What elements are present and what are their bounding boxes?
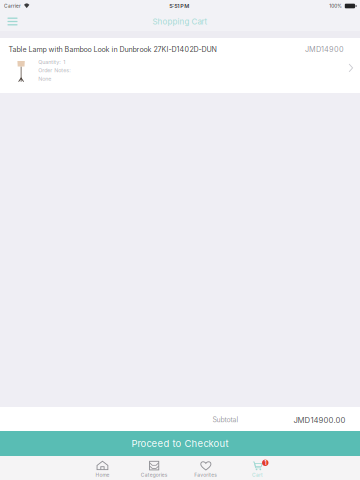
button[interactable]: Categories [128, 456, 180, 480]
staticText: None [38, 75, 51, 82]
staticText: Order Notes: [38, 67, 71, 74]
button[interactable]: Proceed to Checkout [0, 431, 360, 456]
staticText: 5:51 PM [169, 3, 189, 9]
staticText: Carrier [4, 3, 21, 9]
staticText: JMD14900.00 [293, 415, 345, 425]
staticText: Proceed to Checkout [131, 438, 228, 449]
staticText: 1 [264, 459, 266, 466]
staticText: Subtotal [212, 416, 238, 424]
button[interactable]: Home [77, 456, 128, 480]
staticText: Favorites [194, 472, 217, 478]
button[interactable]: Menu [0, 12, 25, 31]
button[interactable]: Cart [232, 456, 283, 480]
staticText: JMD14900 [305, 45, 344, 54]
staticText: Shopping Cart [152, 17, 207, 26]
staticText: Quantity: 1 [38, 59, 65, 65]
staticText: Table Lamp with Bamboo Look in Dunbrook … [8, 45, 216, 54]
staticText: 100% [329, 3, 342, 9]
button[interactable]: Table Lamp with Bamboo Look in Dunbrook … [0, 38, 360, 93]
staticText: Cart [252, 472, 263, 478]
staticText: Home [95, 472, 109, 478]
staticText: Categories [141, 472, 168, 478]
button[interactable]: Favorites [180, 456, 232, 480]
